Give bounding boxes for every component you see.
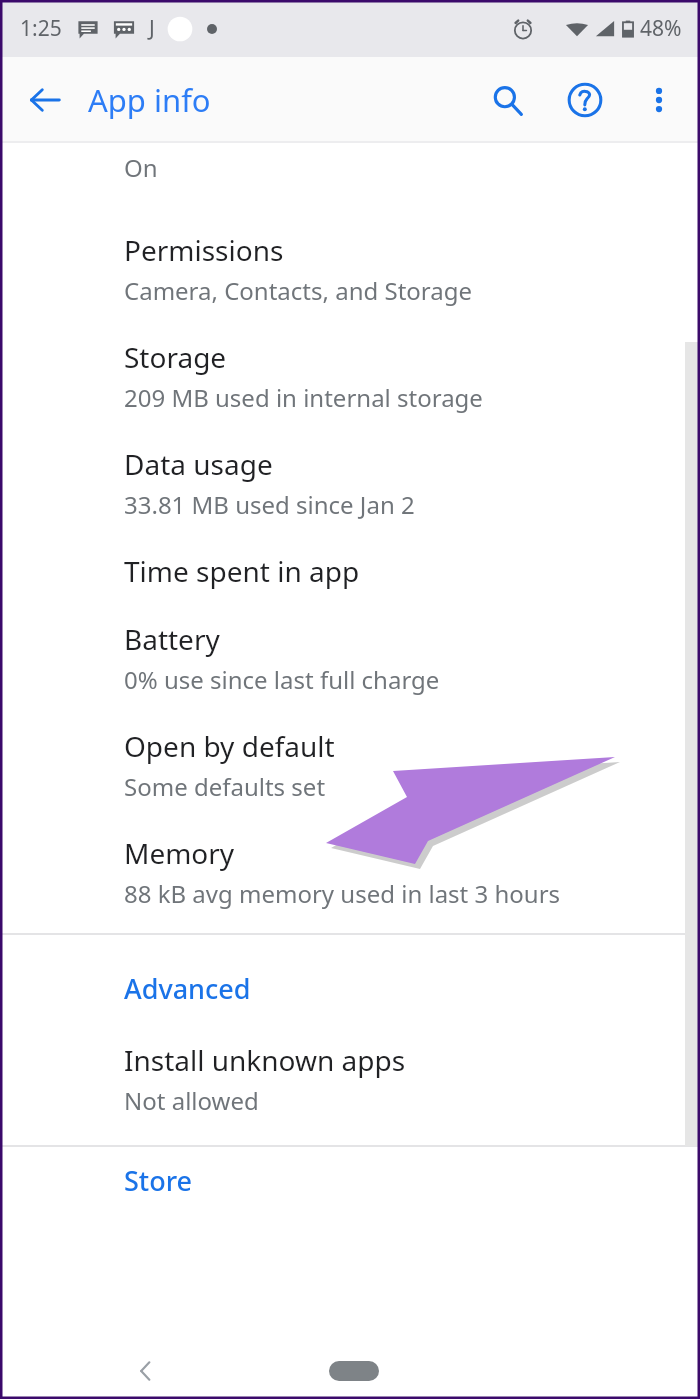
button[interactable]: Time spent in app (0, 521, 700, 590)
staticText: Camera, Contacts, and Storage (124, 274, 473, 307)
staticText: Battery (124, 620, 220, 658)
button[interactable]: Permissions (0, 205, 700, 307)
staticText: 33.81 MB used since Jan 2 (124, 488, 415, 521)
button[interactable]: Store (0, 1147, 700, 1217)
button[interactable]: Storage (0, 307, 700, 414)
button[interactable]: Back (14, 69, 76, 131)
button[interactable]: Install unknown apps (0, 1041, 700, 1117)
staticText: Some defaults set (124, 770, 326, 803)
staticText: Not allowed (124, 1084, 259, 1117)
staticText: 0% use since last full charge (124, 663, 440, 696)
staticText: On (124, 151, 158, 184)
staticText: App info (88, 79, 211, 121)
staticText: 88 kB avg memory used in last 3 hours (124, 877, 561, 910)
staticText: 209 MB used in internal storage (124, 381, 483, 414)
staticText: J (149, 14, 155, 43)
button[interactable]: Memory (0, 803, 700, 910)
staticText: Store (124, 1162, 193, 1199)
button[interactable]: Open by default (0, 696, 700, 803)
button[interactable]: Home (317, 1349, 391, 1393)
staticText: Storage (124, 338, 227, 376)
button[interactable]: On (0, 143, 700, 205)
staticText: Permissions (124, 231, 284, 269)
staticText: 1:25 (20, 14, 62, 43)
staticText: Memory (124, 834, 235, 872)
button[interactable]: Data usage (0, 414, 700, 521)
staticText: 48% (640, 14, 682, 43)
staticText: Install unknown apps (124, 1041, 406, 1079)
button[interactable]: Advanced (0, 935, 700, 1041)
button[interactable]: Help (554, 69, 616, 131)
button[interactable]: More options (628, 69, 690, 131)
button[interactable]: Search (476, 69, 538, 131)
staticText: Open by default (124, 727, 335, 765)
button[interactable]: Back (120, 1345, 172, 1397)
staticText: Time spent in app (124, 552, 360, 590)
button[interactable]: Battery (0, 590, 700, 696)
staticText: Advanced (124, 970, 251, 1007)
staticText: Data usage (124, 445, 273, 483)
